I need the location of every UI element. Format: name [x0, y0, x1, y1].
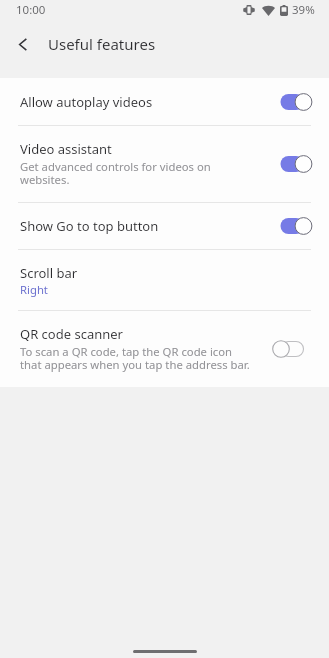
button[interactable]: Switch on [272, 92, 314, 112]
staticText: Video assistant [20, 140, 112, 158]
staticText: Allow autoplay videos [20, 93, 153, 111]
button[interactable]: QR code scanner [0, 311, 329, 387]
staticText: 10:00 [16, 2, 46, 18]
button[interactable]: Allow autoplay videos [0, 78, 329, 125]
staticText: Right [20, 282, 48, 297]
button[interactable]: Video assistant [0, 126, 329, 202]
staticText: To scan a QR code, tap the QR code icon … [20, 344, 254, 373]
button[interactable]: Switch on [272, 154, 314, 174]
button[interactable]: Switch off [272, 339, 314, 359]
staticText: Get advanced controls for videos on webs… [20, 159, 254, 188]
button[interactable]: Show Go to top button [0, 203, 329, 249]
staticText: Useful features [48, 34, 156, 54]
button[interactable]: Switch on [272, 216, 314, 236]
button[interactable]: Scroll bar [0, 250, 329, 310]
button[interactable]: Back [7, 28, 39, 60]
staticText: Scroll bar [20, 264, 78, 282]
staticText: Show Go to top button [20, 217, 159, 235]
staticText: QR code scanner [20, 325, 123, 343]
staticText: 39% [292, 2, 315, 18]
